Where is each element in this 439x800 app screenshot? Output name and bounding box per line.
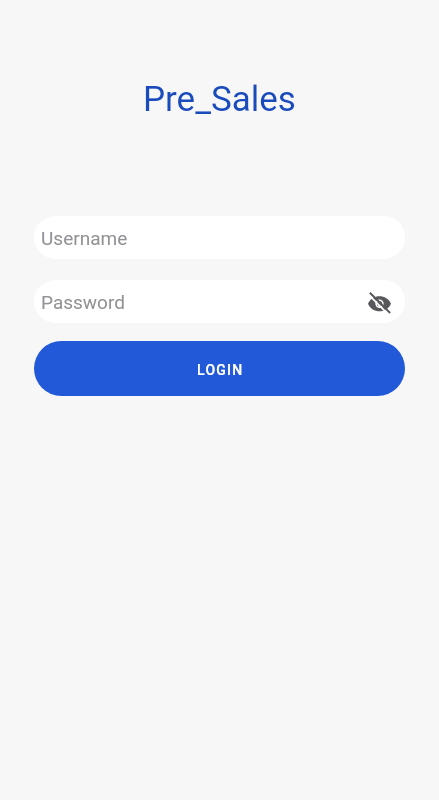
button[interactable]: Toggle password visibility <box>359 282 399 322</box>
button[interactable]: Password <box>34 280 405 323</box>
staticText: LOGIN <box>197 362 244 378</box>
staticText: Password <box>41 291 125 313</box>
button[interactable]: LOGIN <box>34 341 405 396</box>
staticText: Username <box>41 227 128 249</box>
staticText: Pre_Sales <box>143 79 296 120</box>
button[interactable]: Username <box>34 216 405 259</box>
